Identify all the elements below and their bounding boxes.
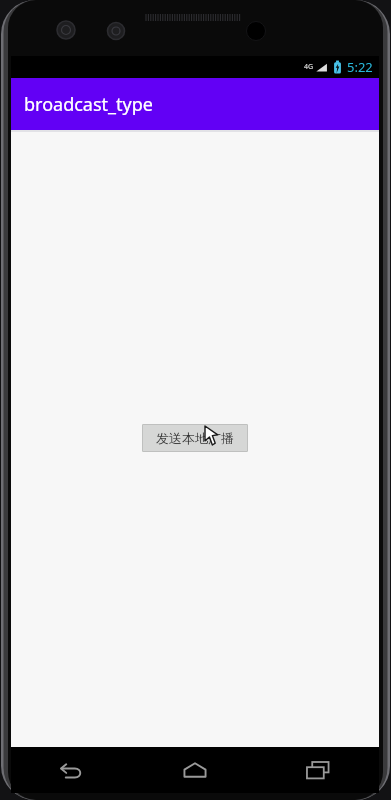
button[interactable]: Back <box>11 747 133 793</box>
staticText: 5:22 <box>347 58 373 76</box>
staticText: broadcast_type <box>24 92 153 117</box>
staticText: 发送本地广播 <box>156 430 234 446</box>
button[interactable]: Home <box>133 747 256 793</box>
button[interactable]: Recents <box>256 747 379 793</box>
button[interactable]: 发送本地广播 <box>142 424 248 452</box>
button[interactable]: broadcast_type <box>11 78 379 130</box>
staticText: 4G <box>304 62 314 72</box>
